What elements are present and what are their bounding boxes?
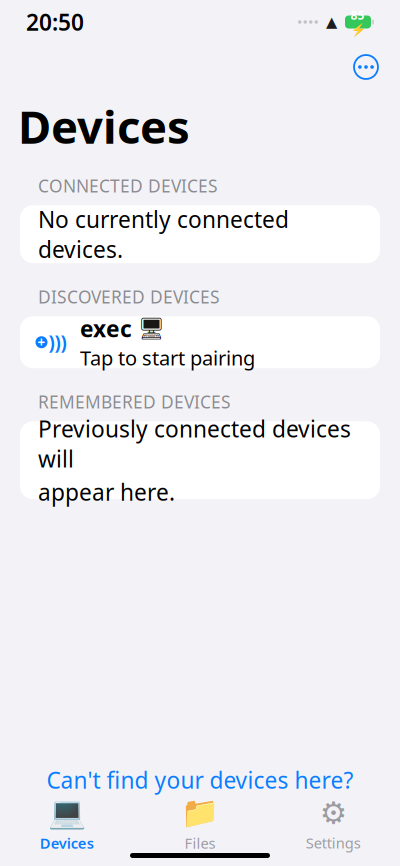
- staticText: ▲: [326, 14, 337, 30]
- staticText: No currently connected devices.: [38, 204, 289, 264]
- staticText: ⚙: [320, 795, 347, 830]
- staticText: +: [37, 333, 45, 351]
- staticText: Tap to start pairing: [80, 344, 255, 371]
- staticText: Settings: [306, 833, 361, 853]
- staticText: REMEMBERED DEVICES: [38, 390, 231, 413]
- button[interactable]: +: [0, 316, 400, 368]
- button[interactable]: More options: [346, 50, 386, 84]
- staticText: 🖥: [138, 316, 165, 341]
- button[interactable]: Can't find your devices here?: [0, 763, 400, 797]
- staticText: Devices: [18, 96, 190, 156]
- staticText: Files: [184, 833, 215, 853]
- staticText: DISCOVERED DEVICES: [38, 285, 220, 308]
- staticText: 💻: [48, 795, 86, 830]
- staticText: 85⚡: [350, 7, 365, 37]
- staticText: 20:50: [26, 7, 84, 37]
- button[interactable]: ⚙: [267, 801, 400, 847]
- staticText: Previously connected devices will: [38, 414, 351, 474]
- button[interactable]: 💻: [0, 801, 133, 847]
- staticText: exec: [80, 313, 132, 343]
- staticText: Can't find your devices here?: [46, 765, 353, 795]
- staticText: Devices: [40, 833, 94, 853]
- button[interactable]: 📁: [133, 801, 267, 847]
- staticText: appear here.: [38, 477, 175, 507]
- staticText: CONNECTED DEVICES: [38, 174, 218, 197]
- staticText: ))): [48, 330, 66, 355]
- staticText: 📁: [181, 795, 219, 830]
